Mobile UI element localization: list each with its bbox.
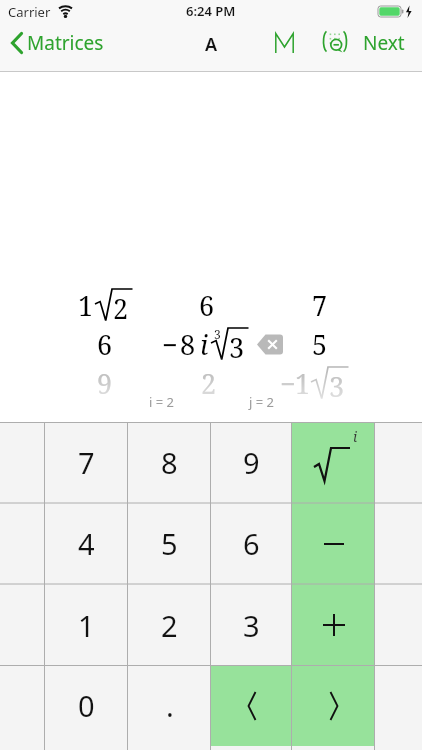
button[interactable] (257, 334, 285, 355)
staticText: 7 (78, 443, 95, 482)
button[interactable]: 3 (211, 584, 292, 666)
button[interactable]: 9 (211, 422, 292, 503)
staticText: i (353, 427, 358, 446)
staticText: i = 2 (149, 393, 174, 411)
button[interactable] (292, 584, 375, 666)
button[interactable]: 2 (128, 584, 211, 666)
staticText: − (280, 365, 296, 402)
staticText: 6 (243, 524, 260, 563)
button[interactable] (211, 665, 292, 746)
staticText: 8 (180, 326, 196, 363)
staticText: 7 (312, 287, 328, 324)
staticText: 3 (243, 606, 260, 645)
staticText: 9 (243, 443, 260, 482)
button[interactable] (321, 27, 349, 57)
staticText: 6 (199, 287, 215, 324)
button[interactable]: Next (356, 28, 412, 58)
staticText: 8 (161, 443, 178, 482)
button[interactable]: 5 (128, 503, 211, 584)
staticText: 2 (161, 606, 178, 645)
staticText: 5 (161, 524, 178, 563)
staticText: 3 (214, 326, 221, 342)
staticText: A (205, 32, 218, 57)
button[interactable] (292, 665, 375, 746)
button[interactable]: 0 (45, 665, 128, 746)
staticText: 2 (113, 290, 129, 320)
button[interactable] (292, 503, 375, 584)
button[interactable]: i (292, 422, 375, 503)
button[interactable]: 6 (211, 503, 292, 584)
staticText: 4 (78, 524, 95, 563)
staticText: Next (363, 30, 405, 56)
staticText: j = 2 (249, 393, 274, 411)
staticText: 3 (329, 368, 345, 398)
button[interactable]: 7 (45, 422, 128, 503)
button[interactable]: Matrices (10, 28, 104, 58)
staticText: 0 (78, 686, 95, 725)
staticText: 1 (295, 365, 311, 402)
button[interactable]: 1 (45, 584, 128, 666)
staticText: 6:24 PM (186, 2, 236, 20)
staticText: 6 (97, 326, 113, 363)
staticText: − (162, 326, 178, 363)
staticText: 1 (78, 287, 94, 324)
staticText: 2 (201, 365, 217, 402)
staticText: Matrices (27, 30, 104, 56)
staticText: 1 (78, 606, 95, 645)
button[interactable]: . (128, 665, 211, 746)
button[interactable]: 8 (128, 422, 211, 503)
staticText: 9 (97, 365, 113, 402)
staticText: . (166, 686, 174, 725)
staticText: 5 (312, 326, 328, 363)
staticText: Carrier (8, 3, 51, 21)
button[interactable]: 4 (45, 503, 128, 584)
button[interactable] (266, 26, 302, 60)
staticText: 3 (229, 329, 245, 359)
staticText: i (200, 326, 209, 363)
